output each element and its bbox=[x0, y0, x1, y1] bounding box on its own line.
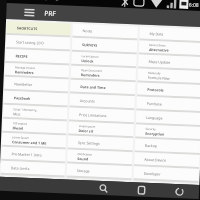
staticText: Language bbox=[146, 115, 163, 120]
button[interactable]: Security bbox=[135, 124, 200, 139]
staticText: Manage Invoice bbox=[15, 65, 36, 70]
staticText: Protocols bbox=[147, 87, 164, 93]
staticText: Newsletter bbox=[14, 81, 32, 87]
button[interactable]: Back bbox=[168, 184, 190, 199]
button[interactable]: Sync Settings bbox=[68, 136, 133, 150]
staticText: Data Limits bbox=[11, 165, 30, 171]
staticText: Open Document bbox=[81, 68, 102, 73]
staticText: My Data bbox=[149, 31, 164, 36]
button[interactable]: Protocols bbox=[137, 82, 200, 97]
staticText: 100 expires bbox=[13, 121, 28, 126]
staticText: Pre-Market 1 Intro bbox=[11, 151, 43, 157]
button[interactable]: About Device bbox=[134, 152, 199, 167]
staticText: Backup bbox=[145, 143, 158, 148]
staticText: Unlock bbox=[81, 58, 94, 64]
staticText: Lorem Ipsum bbox=[12, 135, 29, 140]
staticText: Developer bbox=[144, 171, 161, 176]
button[interactable]: Passbook bbox=[4, 91, 68, 106]
button[interactable]: SURVEYS bbox=[72, 38, 137, 52]
button[interactable]: Data Limits bbox=[1, 161, 65, 175]
staticText: Misc bbox=[13, 111, 21, 117]
staticText: Sound bbox=[77, 156, 88, 161]
staticText: Materially bbox=[148, 71, 161, 75]
staticText: Purchase bbox=[147, 101, 163, 106]
button[interactable]: Purchase bbox=[136, 96, 200, 111]
button[interactable]: RECIPE bbox=[5, 49, 70, 64]
button[interactable]: Lorem Ipsum bbox=[2, 133, 66, 147]
staticText: Reminders bbox=[81, 72, 100, 78]
button[interactable]: Script 1 Rendering bbox=[3, 105, 67, 119]
staticText: Maps Update bbox=[148, 59, 170, 65]
staticText: Lorem ipsum bbox=[79, 124, 96, 129]
button[interactable]: 100 expires bbox=[2, 119, 67, 133]
button[interactable]: Newsletter bbox=[4, 77, 69, 92]
staticText: Sync Settings bbox=[78, 140, 100, 146]
staticText: About Device bbox=[144, 157, 166, 163]
button[interactable]: Lorem ipsum bbox=[68, 122, 134, 136]
staticText: Script 1 Rendering bbox=[13, 107, 37, 112]
button[interactable]: Manage Invoice bbox=[5, 63, 69, 78]
staticText: Start saving 20 D bbox=[16, 39, 44, 45]
staticText: Price Limitations bbox=[79, 112, 107, 118]
button[interactable]: Notification bbox=[67, 150, 133, 164]
button[interactable]: Recent Items bbox=[139, 40, 200, 55]
staticText: Reminders bbox=[15, 69, 34, 75]
button[interactable]: Date and Time bbox=[70, 80, 135, 94]
button[interactable]: Start saving 20 D bbox=[6, 35, 70, 50]
staticText: Diesel bbox=[12, 125, 24, 131]
staticText: Passbook bbox=[14, 95, 31, 101]
button[interactable]: Maps Update bbox=[138, 54, 200, 69]
button[interactable]: Menu bbox=[22, 5, 37, 19]
button[interactable]: Backup bbox=[135, 138, 200, 153]
button[interactable]: Accounts bbox=[69, 94, 135, 108]
staticText: SHORTCUTS bbox=[17, 25, 38, 31]
button[interactable]: Open Document bbox=[71, 66, 136, 80]
staticText: Encryption bbox=[145, 131, 164, 137]
staticText: Date and Time bbox=[80, 84, 106, 90]
staticText: PRF bbox=[44, 8, 57, 18]
staticText: Formula New bbox=[148, 75, 170, 81]
button[interactable]: Developer bbox=[133, 166, 199, 181]
staticText: Consumer and 1 Mil bbox=[12, 139, 47, 146]
button[interactable]: Home bbox=[130, 182, 152, 197]
staticText: SURVEYS bbox=[82, 42, 98, 48]
staticText: Lorem Ipsum bbox=[81, 54, 99, 59]
staticText: RECIPE bbox=[15, 53, 28, 59]
staticText: Recent Items bbox=[149, 43, 166, 48]
staticText: Security bbox=[145, 127, 157, 131]
button[interactable]: Language bbox=[136, 110, 200, 125]
button[interactable]: My Data bbox=[139, 26, 200, 41]
button[interactable]: Notes bbox=[72, 24, 138, 38]
button[interactable]: Pre-Market 1 Intro bbox=[1, 147, 66, 161]
staticText: Notes bbox=[83, 28, 93, 33]
button[interactable]: Search bbox=[92, 181, 114, 195]
button[interactable]: SHORTCUTS bbox=[6, 21, 71, 36]
button[interactable]: Storage bbox=[67, 164, 132, 178]
button[interactable]: Materially bbox=[138, 68, 200, 83]
staticText: Accounts bbox=[80, 98, 95, 104]
button[interactable]: Lorem Ipsum bbox=[71, 52, 137, 66]
staticText: Alternative bbox=[149, 47, 169, 53]
staticText: Dolor sit bbox=[78, 128, 94, 134]
staticText: Storage bbox=[77, 168, 90, 173]
button[interactable]: Price Limitations bbox=[69, 108, 134, 122]
staticText: 6:08 bbox=[189, 1, 199, 8]
staticText: Notification bbox=[77, 152, 93, 157]
